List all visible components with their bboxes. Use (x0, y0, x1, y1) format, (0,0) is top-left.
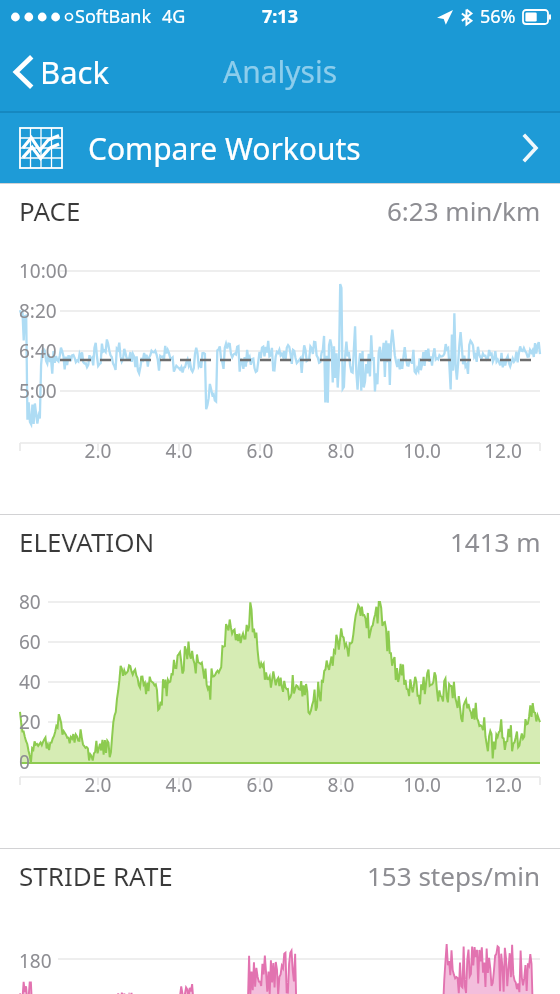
staticText: 56% (480, 4, 516, 29)
staticText: 0 (19, 749, 30, 775)
staticText: 2.0 (70, 438, 126, 464)
staticText: 4.0 (151, 438, 207, 464)
staticText: 6:23 min/km (387, 193, 541, 228)
staticText: 2.0 (70, 772, 126, 798)
staticText: ELEVATION (19, 524, 155, 559)
staticText: 153 steps/min (367, 858, 541, 893)
staticText: 8.0 (313, 772, 369, 798)
staticText: 12.0 (475, 772, 531, 798)
staticText: Compare Workouts (88, 128, 361, 169)
staticText: 4G (162, 4, 186, 29)
staticText: 20 (19, 709, 41, 735)
staticText: 12.0 (475, 438, 531, 464)
staticText: 4.0 (151, 772, 207, 798)
button[interactable]: Back (0, 41, 127, 103)
staticText: Analysis (223, 51, 338, 92)
other: Location (437, 9, 453, 25)
staticText: 6.0 (232, 438, 288, 464)
staticText: 10.0 (394, 438, 450, 464)
staticText: 10:00 (19, 258, 68, 284)
staticText: Back (40, 51, 109, 93)
staticText: 60 (19, 629, 41, 655)
staticText: 80 (19, 589, 41, 615)
staticText: 8:20 (19, 298, 57, 324)
staticText: 5:00 (19, 378, 57, 404)
staticText: 7:13 (262, 4, 298, 29)
other: Bluetooth (461, 9, 472, 25)
staticText: 6.0 (232, 772, 288, 798)
staticText: STRIDE RATE (19, 858, 173, 893)
staticText: 40 (19, 669, 41, 695)
staticText: 6:40 (19, 338, 57, 364)
other: Battery (523, 10, 551, 24)
staticText: 8.0 (313, 438, 369, 464)
staticText: 180 (19, 948, 52, 974)
staticText: PACE (19, 193, 81, 228)
staticText: 1413 m (450, 524, 541, 559)
button[interactable]: Compare Workouts (0, 113, 560, 183)
staticText: 10.0 (394, 772, 450, 798)
staticText: SoftBank (75, 4, 151, 29)
